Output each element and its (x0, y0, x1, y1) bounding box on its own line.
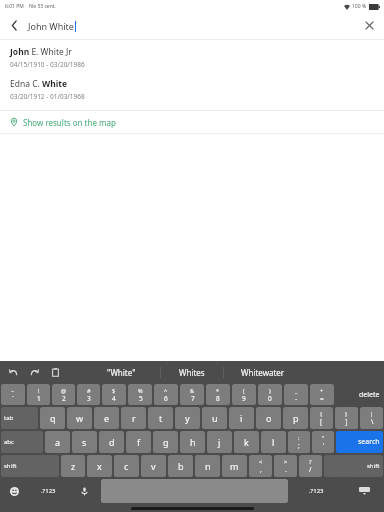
staticText: tab (4, 414, 14, 422)
staticText: = (320, 394, 324, 403)
button[interactable]: Whitewater (224, 361, 302, 383)
staticText: x (97, 460, 102, 472)
staticText: , (260, 465, 262, 474)
staticText: | (370, 410, 374, 417)
button[interactable]: delete (336, 384, 383, 405)
button[interactable]: > (274, 455, 297, 477)
staticText: file 53 cent. (29, 3, 56, 10)
button[interactable]: c (114, 455, 139, 477)
staticText: z (71, 460, 76, 472)
button[interactable]: * (206, 384, 230, 405)
staticText: ] (345, 417, 348, 426)
staticText: < (259, 458, 263, 465)
button[interactable]: < (249, 455, 272, 477)
button[interactable]: shift (324, 455, 383, 477)
button[interactable]: { (310, 407, 333, 429)
button[interactable]: l (261, 431, 286, 453)
staticText: 1 (37, 394, 41, 403)
button[interactable]: a (45, 431, 70, 453)
staticText: shift (4, 462, 17, 470)
staticText: v (151, 460, 156, 472)
button[interactable]: + (310, 384, 334, 405)
staticText: $ (112, 387, 116, 394)
staticText: w (76, 412, 84, 424)
button[interactable]: $ (102, 384, 126, 405)
button[interactable]: & (180, 384, 204, 405)
button[interactable]: ( (232, 384, 256, 405)
staticText: { (320, 410, 323, 417)
staticText: \ (371, 417, 374, 426)
button[interactable]: m (222, 455, 247, 477)
staticText: y (185, 412, 190, 424)
staticText: > (284, 458, 288, 465)
button[interactable]: shift (1, 455, 59, 477)
button[interactable]: x (87, 455, 112, 477)
button[interactable]: | (360, 407, 383, 429)
button[interactable]: Redo (27, 365, 41, 379)
staticText: ~ (11, 387, 15, 394)
button[interactable]: ? (299, 455, 322, 477)
button[interactable]: Clipboard (48, 365, 62, 379)
button[interactable]: ~ (1, 384, 25, 405)
button[interactable]: Voice input (69, 479, 99, 503)
staticText: 8 (216, 394, 220, 403)
button[interactable]: Undo (6, 365, 20, 379)
button[interactable]: } (335, 407, 358, 429)
button[interactable]: q (40, 407, 65, 429)
button[interactable]: z (61, 455, 85, 477)
button[interactable]: search (336, 431, 383, 453)
button[interactable]: b (168, 455, 193, 477)
button[interactable]: t (148, 407, 173, 429)
button[interactable]: g (153, 431, 178, 453)
button[interactable]: Emoji (1, 479, 27, 503)
button[interactable]: n (195, 455, 220, 477)
button[interactable]: Whites (161, 361, 223, 383)
button[interactable]: p (283, 407, 308, 429)
button[interactable]: .?123 (29, 479, 67, 503)
button[interactable]: w (67, 407, 92, 429)
button[interactable]: v (141, 455, 166, 477)
button[interactable]: John E. White Jr (0, 46, 384, 69)
button[interactable]: "White" (82, 361, 160, 383)
button[interactable]: Edna C. White (0, 78, 384, 101)
staticText: d (109, 436, 115, 448)
button[interactable]: tab (1, 407, 38, 429)
button[interactable]: ) (258, 384, 282, 405)
button[interactable]: Caps lock (1, 431, 43, 453)
staticText: ! (38, 387, 40, 394)
button[interactable]: e (94, 407, 119, 429)
button[interactable]: Show results on the map (0, 111, 384, 133)
button[interactable]: f (126, 431, 151, 453)
staticText: p (293, 412, 299, 424)
button[interactable]: : (288, 431, 310, 453)
button[interactable]: r (121, 407, 146, 429)
button[interactable]: # (77, 384, 100, 405)
button[interactable]: ! (27, 384, 50, 405)
button[interactable]: y (175, 407, 200, 429)
button[interactable]: h (180, 431, 205, 453)
button[interactable]: Back (0, 12, 28, 39)
button[interactable]: Hide keyboard (345, 479, 383, 503)
button[interactable]: d (99, 431, 124, 453)
button[interactable]: u (202, 407, 227, 429)
staticText: f (137, 436, 141, 448)
button[interactable]: s (72, 431, 97, 453)
staticText: ? (309, 458, 312, 465)
button[interactable]: o (256, 407, 281, 429)
button[interactable]: .?123 (290, 479, 343, 503)
button[interactable]: ^ (154, 384, 178, 405)
button[interactable]: % (128, 384, 152, 405)
button[interactable]: @ (52, 384, 75, 405)
button[interactable]: k (234, 431, 259, 453)
staticText: ' (323, 441, 325, 450)
button[interactable]: Clear (354, 12, 384, 39)
staticText: _ (295, 387, 298, 394)
button[interactable]: _ (284, 384, 308, 405)
staticText: g (163, 436, 169, 448)
button[interactable]: i (229, 407, 254, 429)
staticText: ` (12, 394, 14, 403)
button[interactable]: " (312, 431, 334, 453)
button[interactable]: j (207, 431, 232, 453)
staticText: ) (269, 387, 271, 394)
